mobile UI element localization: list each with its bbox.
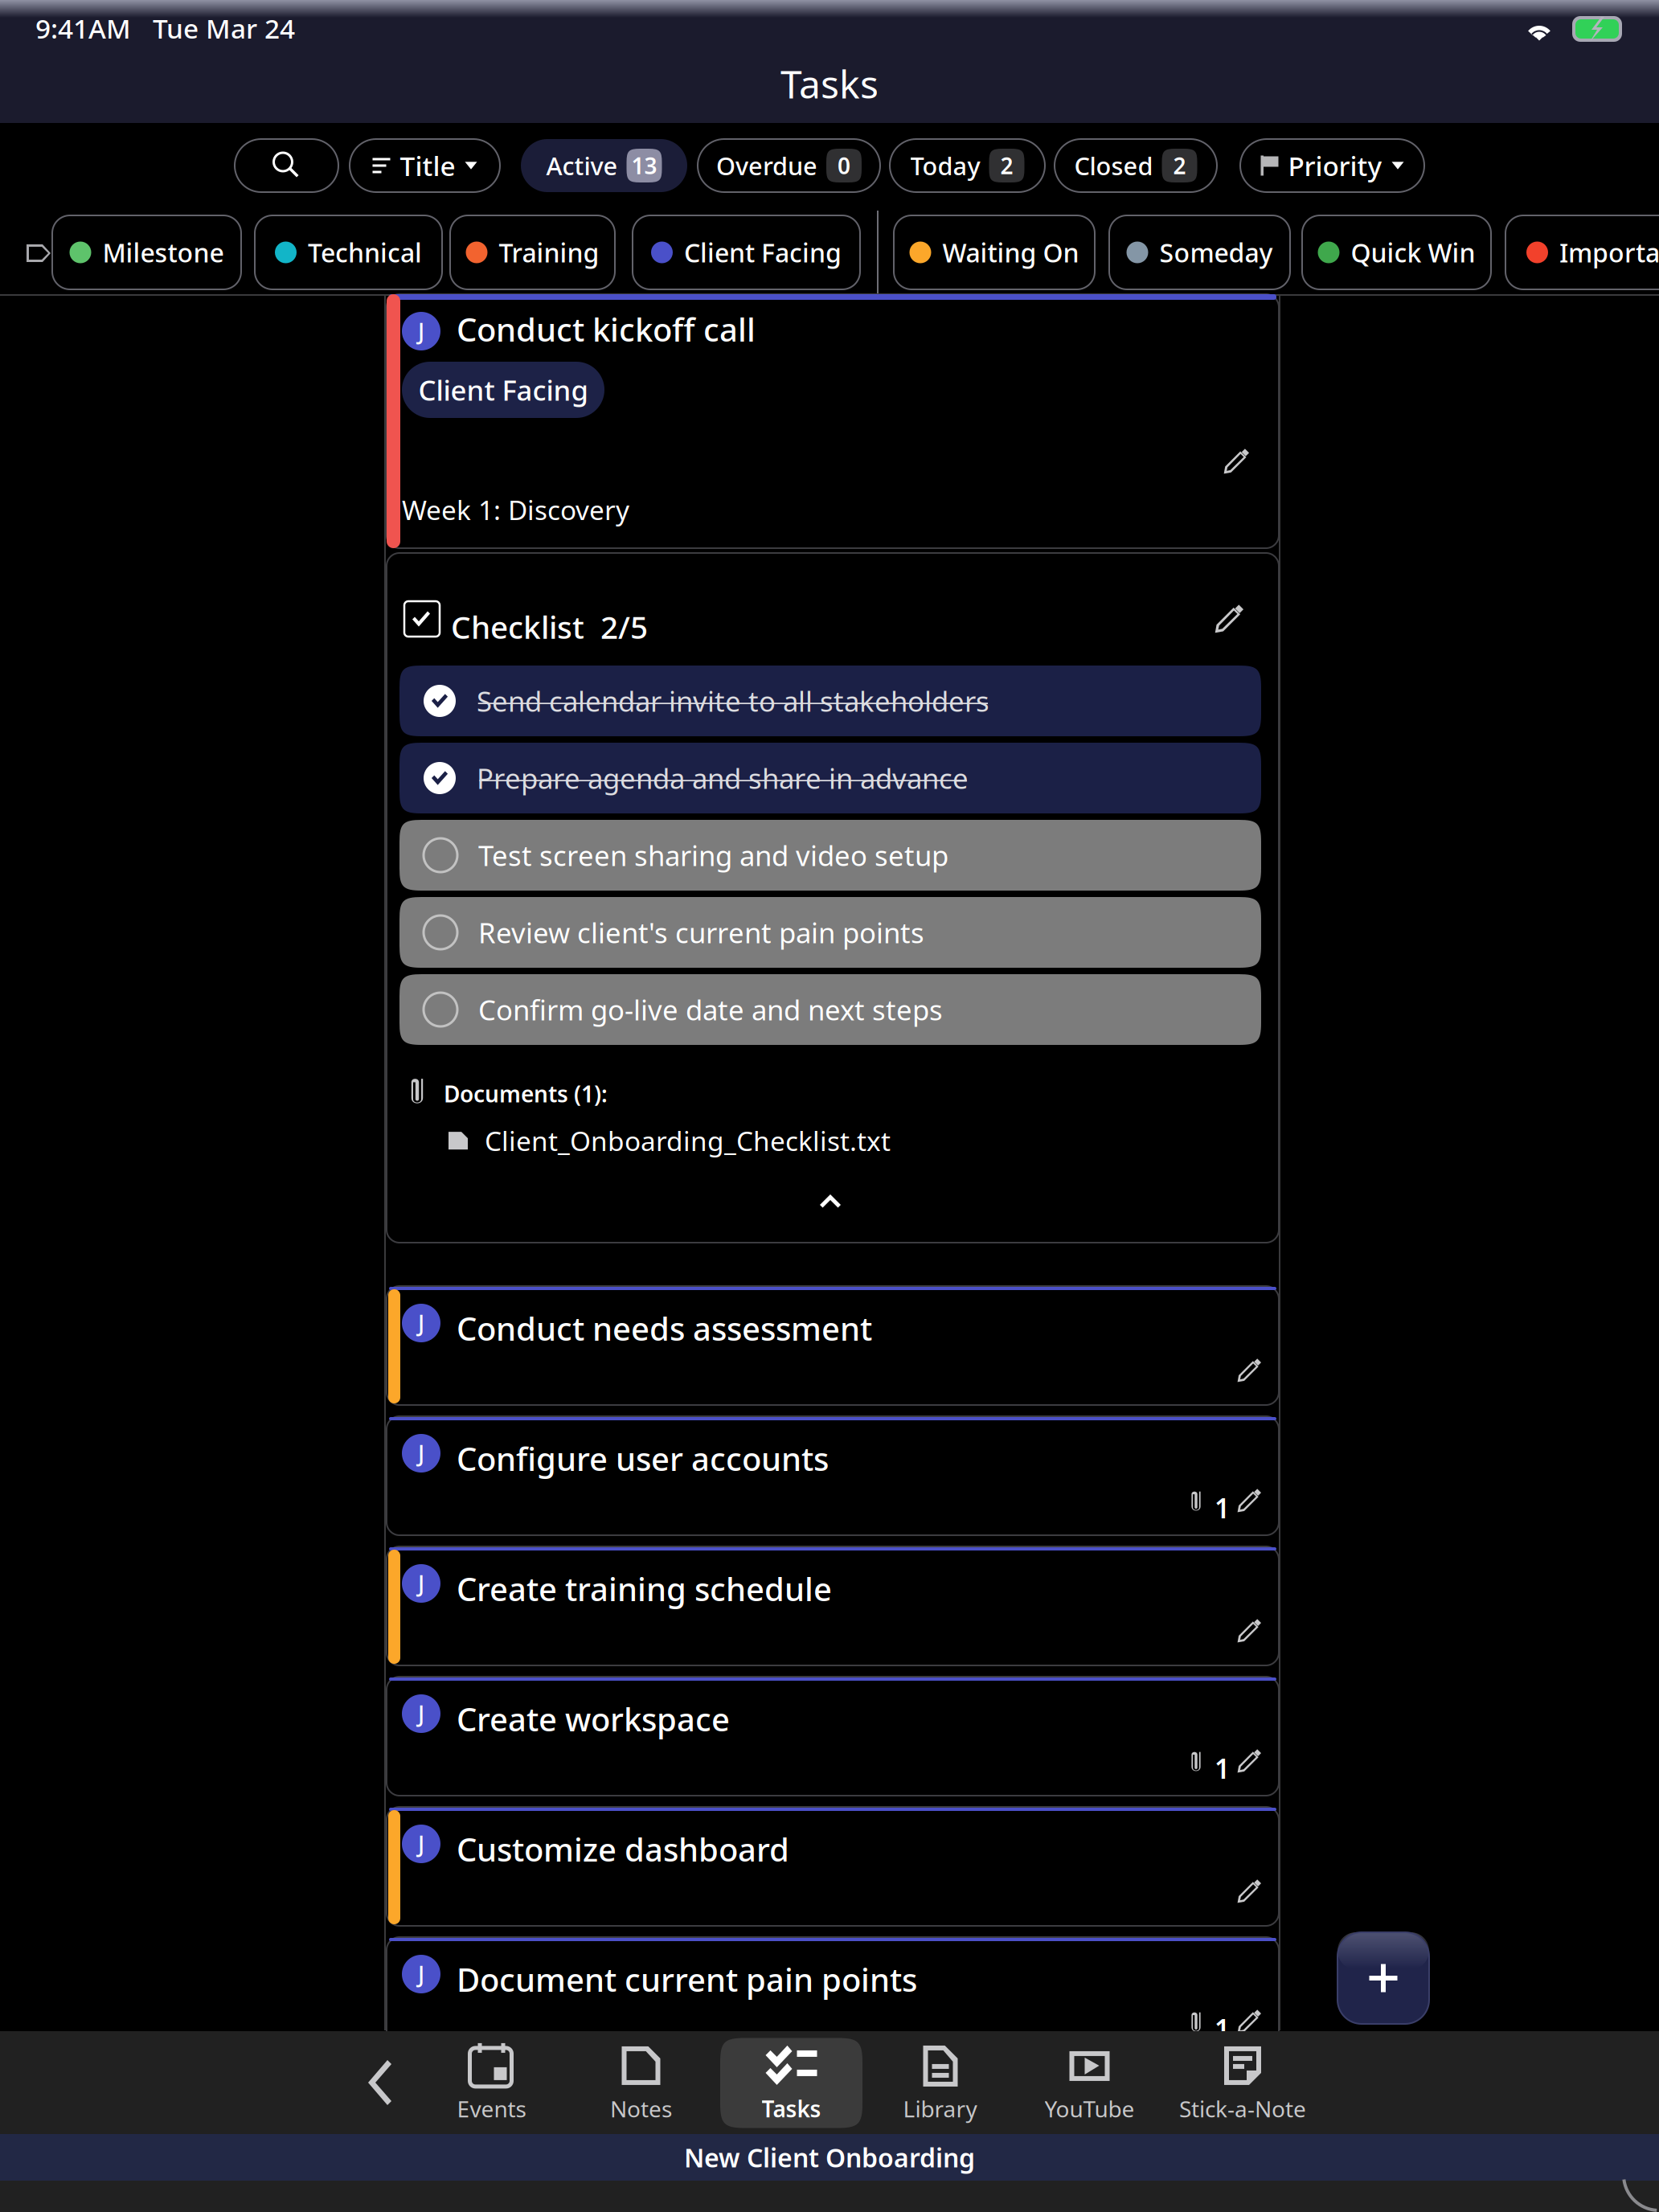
staticText: J: [418, 1829, 424, 1859]
staticText: Create training schedule: [457, 1567, 832, 1610]
button[interactable]: J: [387, 1677, 1279, 1796]
button[interactable]: Edit task: [1237, 1489, 1261, 1513]
button[interactable]: Search: [235, 139, 338, 192]
button[interactable]: Closed: [1055, 139, 1217, 192]
button[interactable]: Add task: [1337, 1932, 1429, 2024]
staticText: Customize dashboard: [457, 1828, 789, 1870]
staticText: 1: [1215, 2011, 1230, 2047]
staticText: J: [418, 1308, 424, 1338]
button[interactable]: Overdue: [698, 139, 880, 192]
staticText: Review client's current pain points: [478, 914, 924, 951]
staticText: Closed: [1074, 149, 1153, 182]
staticText: Today: [910, 149, 980, 182]
button[interactable]: Prepare agenda and share in advance: [399, 743, 1261, 813]
button[interactable]: Tasks: [720, 2038, 862, 2128]
button[interactable]: Edit task: [1237, 1619, 1261, 1643]
button[interactable]: J: [387, 1546, 1279, 1665]
staticText: Notes: [610, 2094, 672, 2124]
button[interactable]: Collapse: [820, 1194, 841, 1208]
button[interactable]: Important: [1505, 215, 1659, 289]
staticText: Training: [499, 235, 599, 270]
button[interactable]: Edit task: [1237, 1749, 1261, 1773]
staticText: Test screen sharing and video setup: [478, 837, 948, 874]
staticText: Events: [457, 2094, 526, 2124]
staticText: 2: [1173, 151, 1186, 181]
button[interactable]: Edit task: [1223, 449, 1249, 474]
button[interactable]: Today: [890, 139, 1045, 192]
button[interactable]: J: [387, 1286, 1279, 1405]
staticText: Create workspace: [457, 1698, 730, 1740]
button[interactable]: Review client's current pain points: [399, 897, 1261, 968]
button[interactable]: Send calendar invite to all stakeholders: [399, 666, 1261, 736]
staticText: Tasks: [762, 2094, 821, 2124]
button[interactable]: Title: [350, 139, 500, 192]
button[interactable]: Technical: [255, 215, 442, 289]
button[interactable]: Client_Onboarding_Checklist.txt: [449, 1123, 891, 1158]
staticText: Milestone: [102, 235, 224, 270]
staticText: New Client Onboarding: [684, 2140, 975, 2174]
staticText: Priority: [1288, 148, 1382, 183]
staticText: 1: [1215, 1751, 1230, 1786]
button[interactable]: Edit checklist: [1215, 604, 1243, 633]
button[interactable]: Back: [363, 2057, 399, 2108]
staticText: J: [418, 316, 424, 346]
staticText: J: [418, 1568, 424, 1598]
staticText: Tasks: [780, 58, 879, 109]
staticText: 13: [631, 151, 657, 181]
button[interactable]: Client Facing: [633, 215, 860, 289]
button[interactable]: Notes: [570, 2038, 712, 2128]
staticText: 2: [1000, 151, 1013, 181]
staticText: Checklist 2/5: [451, 606, 648, 647]
staticText: 0: [838, 151, 850, 181]
staticText: Client Facing: [684, 235, 842, 270]
staticText: Stick-a-Note: [1179, 2094, 1306, 2124]
staticText: Waiting On: [942, 235, 1079, 270]
staticText: Client_Onboarding_Checklist.txt: [485, 1123, 891, 1158]
staticText: Technical: [308, 235, 422, 270]
staticText: Configure user accounts: [457, 1437, 829, 1480]
staticText: Active: [546, 149, 618, 182]
button[interactable]: Test screen sharing and video setup: [399, 820, 1261, 891]
staticText: Overdue: [716, 149, 817, 182]
button[interactable]: Stick-a-Note: [1164, 2038, 1321, 2128]
button[interactable]: Priority: [1240, 139, 1424, 192]
staticText: Conduct needs assessment: [457, 1307, 872, 1350]
staticText: Important: [1559, 235, 1659, 270]
button[interactable]: Events: [420, 2038, 563, 2128]
staticText: Confirm go-live date and next steps: [478, 991, 943, 1028]
staticText: Document current pain points: [457, 1958, 917, 2001]
staticText: Quick Win: [1351, 235, 1475, 270]
staticText: J: [418, 1438, 424, 1468]
staticText: J: [418, 1959, 424, 1989]
staticText: Title: [400, 148, 455, 183]
staticText: YouTube: [1045, 2094, 1135, 2124]
button[interactable]: Library: [869, 2038, 1011, 2128]
button[interactable]: Quick Win: [1302, 215, 1491, 289]
button[interactable]: J: [387, 1937, 1279, 2056]
button[interactable]: Someday: [1109, 215, 1290, 289]
staticText: Library: [903, 2094, 977, 2124]
staticText: Send calendar invite to all stakeholders: [477, 682, 989, 719]
staticText: Documents (1):: [444, 1079, 608, 1109]
button[interactable]: J: [387, 294, 1279, 548]
button[interactable]: Active: [521, 139, 687, 192]
button[interactable]: Waiting On: [894, 215, 1095, 289]
button[interactable]: Confirm go-live date and next steps: [399, 974, 1261, 1045]
button[interactable]: J: [387, 1807, 1279, 1926]
button[interactable]: J: [387, 1416, 1279, 1535]
staticText: Prepare agenda and share in advance: [477, 760, 969, 797]
staticText: 9:41AM Tue Mar 24: [35, 10, 295, 46]
button[interactable]: Edit task: [1237, 2009, 1261, 2034]
staticText: J: [418, 1699, 424, 1729]
staticText: 1: [1215, 1490, 1230, 1526]
button[interactable]: YouTube: [1018, 2038, 1161, 2128]
staticText: Someday: [1159, 235, 1273, 270]
button[interactable]: Edit task: [1237, 1879, 1261, 1903]
staticText: Week 1: Discovery: [402, 492, 629, 528]
button[interactable]: Milestone: [52, 215, 241, 289]
staticText: Client Facing: [418, 371, 588, 408]
button[interactable]: Training: [450, 215, 615, 289]
button[interactable]: Edit task: [1237, 1358, 1261, 1382]
staticText: Conduct kickoff call: [457, 308, 756, 351]
